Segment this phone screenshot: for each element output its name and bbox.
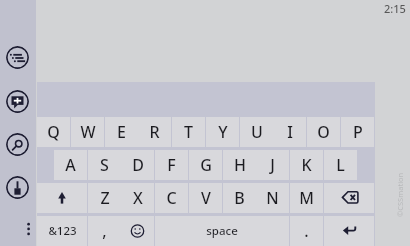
staticText: S xyxy=(100,154,109,176)
button[interactable]: J xyxy=(256,150,289,180)
staticText: Q xyxy=(47,121,60,143)
button[interactable]: A xyxy=(54,150,87,180)
staticText: , xyxy=(102,220,107,242)
button[interactable]: Backspace xyxy=(324,183,374,213)
staticText: 2:15 xyxy=(384,1,406,16)
button[interactable]: O xyxy=(307,117,340,147)
button[interactable]: Format xyxy=(6,176,29,199)
button[interactable]: U xyxy=(240,117,273,147)
button[interactable]: space xyxy=(155,216,289,246)
button[interactable]: L xyxy=(324,150,357,180)
staticText: W xyxy=(80,121,96,143)
button[interactable]: &123 xyxy=(37,216,87,246)
staticText: D xyxy=(132,154,144,176)
button[interactable]: D xyxy=(121,150,154,180)
staticText: . xyxy=(304,220,309,242)
staticText: E xyxy=(117,121,126,143)
button[interactable]: , xyxy=(88,216,121,246)
staticText: space xyxy=(206,223,238,239)
staticText: B xyxy=(234,187,245,209)
staticText: H xyxy=(234,154,246,176)
button[interactable]: Search xyxy=(6,133,29,156)
staticText: ©CSSmation xyxy=(395,172,405,217)
button[interactable]: Q xyxy=(37,117,70,147)
button[interactable]: V xyxy=(189,183,222,213)
staticText: I xyxy=(287,121,293,143)
button[interactable]: E xyxy=(105,117,138,147)
button[interactable]: Z xyxy=(88,183,121,213)
button[interactable]: More options xyxy=(24,219,34,239)
button[interactable]: G xyxy=(189,150,222,180)
button[interactable]: Y xyxy=(206,117,239,147)
staticText: P xyxy=(353,121,363,143)
button[interactable]: X xyxy=(121,183,154,213)
button[interactable]: P xyxy=(341,117,374,147)
staticText: C xyxy=(166,187,177,209)
staticText: M xyxy=(299,187,314,209)
staticText: V xyxy=(201,187,211,209)
staticText: Z xyxy=(100,187,110,209)
button[interactable]: . xyxy=(290,216,323,246)
staticText: A xyxy=(65,154,76,176)
button[interactable]: Add comment xyxy=(6,90,29,113)
staticText: T xyxy=(184,121,193,143)
button[interactable]: H xyxy=(223,150,256,180)
button[interactable]: W xyxy=(71,117,104,147)
staticText: U xyxy=(251,121,263,143)
button[interactable]: Outline xyxy=(6,46,29,69)
button[interactable]: C xyxy=(155,183,188,213)
staticText: F xyxy=(167,154,176,176)
button[interactable]: F xyxy=(155,150,188,180)
button[interactable]: B xyxy=(223,183,256,213)
staticText: Y xyxy=(218,121,228,143)
button[interactable]: M xyxy=(290,183,323,213)
staticText: X xyxy=(133,187,143,209)
staticText: O xyxy=(317,121,330,143)
staticText: R xyxy=(149,121,160,143)
button[interactable]: S xyxy=(88,150,121,180)
staticText: L xyxy=(336,154,345,176)
staticText: G xyxy=(200,154,212,176)
staticText: N xyxy=(266,187,279,209)
button[interactable]: I xyxy=(273,117,306,147)
button[interactable]: Emoji xyxy=(121,216,154,246)
button[interactable]: Shift xyxy=(37,183,87,213)
button[interactable]: N xyxy=(256,183,289,213)
staticText: K xyxy=(301,154,312,176)
button[interactable]: T xyxy=(172,117,205,147)
button[interactable]: K xyxy=(290,150,323,180)
staticText: &123 xyxy=(48,223,77,239)
button[interactable]: R xyxy=(138,117,171,147)
staticText: J xyxy=(270,154,275,176)
button[interactable]: Enter xyxy=(324,216,374,246)
